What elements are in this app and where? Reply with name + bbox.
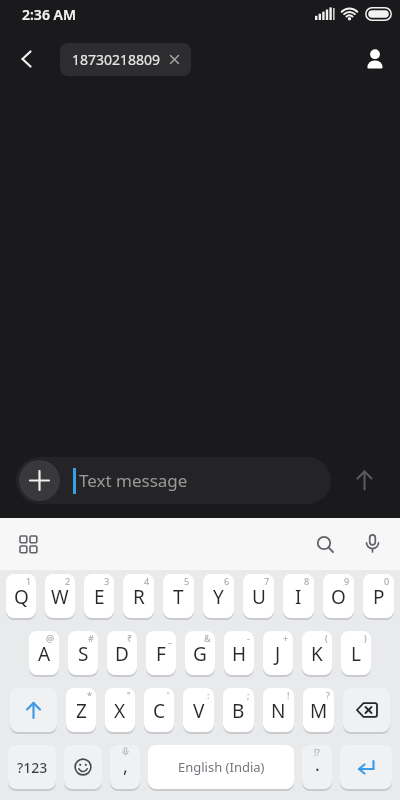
- button[interactable]: D: [107, 631, 137, 675]
- button[interactable]: B: [223, 688, 254, 732]
- staticText: ,: [123, 754, 128, 779]
- button[interactable]: C: [144, 688, 174, 732]
- staticText: Q: [14, 584, 29, 610]
- staticText: C: [153, 698, 166, 724]
- staticText: L: [351, 641, 361, 667]
- button[interactable]: U: [243, 574, 274, 618]
- staticText: N: [271, 698, 286, 724]
- staticText: G: [193, 641, 207, 667]
- staticText: 2: [65, 575, 71, 587]
- button[interactable]: O: [323, 574, 354, 618]
- button[interactable]: [340, 745, 392, 789]
- button[interactable]: Z: [66, 688, 96, 732]
- staticText: ): [364, 632, 367, 644]
- button[interactable]: English (India): [148, 745, 294, 789]
- button[interactable]: E: [84, 574, 114, 618]
- button[interactable]: A: [29, 631, 59, 675]
- staticText: B: [232, 698, 245, 724]
- staticText: A: [38, 641, 51, 667]
- button[interactable]: S: [68, 631, 98, 675]
- staticText: 2:36 AM: [22, 5, 76, 24]
- staticText: R: [133, 584, 145, 610]
- staticText: #: [88, 632, 94, 644]
- button[interactable]: [365, 534, 380, 554]
- button[interactable]: [343, 688, 390, 732]
- button[interactable]: [353, 469, 376, 492]
- staticText: X: [114, 698, 126, 724]
- staticText: +: [283, 632, 289, 644]
- button[interactable]: H: [224, 631, 254, 675]
- staticText: 3: [104, 575, 110, 587]
- button[interactable]: L: [341, 631, 371, 675]
- staticText: I: [295, 584, 302, 610]
- button[interactable]: J: [263, 631, 293, 675]
- staticText: Y: [213, 584, 224, 610]
- button[interactable]: N: [263, 688, 294, 732]
- staticText: J: [275, 641, 281, 667]
- staticText: H: [232, 641, 247, 667]
- staticText: _: [168, 632, 172, 644]
- button[interactable]: K: [302, 631, 332, 675]
- staticText: W: [51, 584, 69, 610]
- staticText: !: [287, 689, 290, 701]
- button[interactable]: Q: [6, 574, 36, 618]
- staticText: E: [94, 584, 105, 610]
- staticText: (: [325, 632, 328, 644]
- staticText: ₹: [127, 632, 133, 644]
- staticText: 0: [384, 575, 390, 587]
- button[interactable]: T: [163, 574, 194, 618]
- staticText: !?: [314, 747, 320, 758]
- button[interactable]: M: [303, 688, 334, 732]
- staticText: 7: [264, 575, 270, 587]
- staticText: .: [315, 752, 320, 777]
- staticText: :: [207, 689, 210, 701]
- button[interactable]: [364, 48, 386, 70]
- staticText: U: [252, 584, 266, 610]
- staticText: P: [373, 584, 385, 610]
- button[interactable]: ,: [110, 745, 140, 789]
- staticText: K: [311, 641, 323, 667]
- button[interactable]: P: [363, 574, 394, 618]
- staticText: 9: [344, 575, 350, 587]
- staticText: @: [46, 632, 55, 644]
- button[interactable]: W: [45, 574, 75, 618]
- staticText: ?: [326, 689, 330, 701]
- staticText: V: [193, 698, 205, 724]
- staticText: 6: [224, 575, 230, 587]
- button[interactable]: .: [302, 745, 332, 789]
- staticText: English (India): [178, 758, 265, 776]
- staticText: 5: [184, 575, 190, 587]
- staticText: M: [310, 698, 328, 724]
- staticText: 1: [26, 575, 32, 587]
- staticText: O: [331, 584, 346, 610]
- staticText: T: [173, 584, 184, 610]
- button[interactable]: F: [146, 631, 176, 675]
- staticText: *: [87, 689, 92, 701]
- staticText: Z: [76, 698, 87, 724]
- button[interactable]: [10, 688, 57, 732]
- button[interactable]: V: [183, 688, 214, 732]
- staticText: -: [247, 632, 250, 644]
- button[interactable]: [316, 535, 335, 554]
- button[interactable]: I: [283, 574, 314, 618]
- staticText: ?123: [17, 758, 48, 777]
- button[interactable]: [19, 460, 60, 501]
- staticText: Text message: [79, 469, 188, 492]
- button[interactable]: ?123: [8, 745, 56, 789]
- button[interactable]: [18, 50, 36, 68]
- staticText: ;: [247, 689, 250, 701]
- button[interactable]: [64, 745, 102, 789]
- button[interactable]: [20, 536, 37, 553]
- button[interactable]: Y: [203, 574, 234, 618]
- staticText: 18730218809: [72, 50, 161, 69]
- staticText: 8: [304, 575, 310, 587]
- button[interactable]: R: [123, 574, 154, 618]
- staticText: ': [167, 689, 170, 701]
- button[interactable]: G: [185, 631, 215, 675]
- staticText: F: [156, 641, 166, 667]
- button[interactable]: Text message: [16, 457, 331, 504]
- staticText: D: [115, 641, 129, 667]
- button[interactable]: X: [105, 688, 135, 732]
- staticText: &: [204, 632, 211, 644]
- button[interactable]: 18730218809: [60, 43, 191, 76]
